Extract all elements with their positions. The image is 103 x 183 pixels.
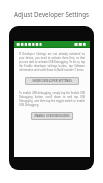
- other: Phone screenshot of settings app: [9, 26, 94, 170]
- staticText: Adjust Developer Settings: [14, 10, 89, 18]
- button[interactable]: ENABLE USB DEBUGGING: [31, 112, 73, 120]
- staticText: If Developer Settings are not already ac…: [19, 52, 85, 72]
- staticText: ENABLE USB DEBUGGING: [34, 114, 70, 118]
- staticText: SHOW DEVELOPER SETTINGS: [32, 79, 72, 83]
- button[interactable]: SHOW DEVELOPER SETTINGS: [25, 77, 79, 85]
- staticText: To enable USB debugging, simply tap the …: [19, 91, 85, 107]
